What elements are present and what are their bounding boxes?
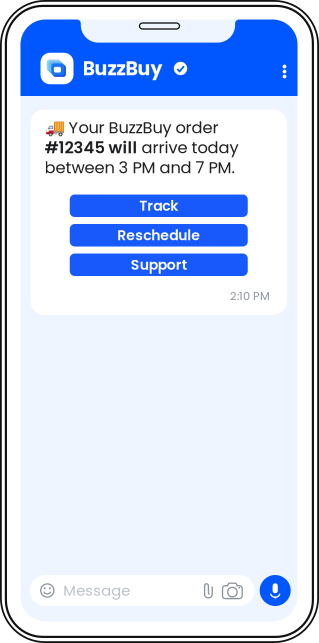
staticText: 2:10 PM (230, 288, 270, 304)
button[interactable]: Track (70, 194, 248, 217)
staticText: Support (131, 255, 187, 274)
button[interactable]: More options (275, 53, 293, 83)
button[interactable]: Reschedule (70, 224, 248, 246)
button[interactable]: BuzzBuy (40, 53, 73, 84)
button[interactable]: Message (30, 575, 255, 606)
staticText: between 3 PM and 7 PM. (44, 156, 234, 179)
button[interactable]: Support (70, 253, 248, 276)
staticText: Reschedule (117, 225, 200, 245)
staticText: BuzzBuy (82, 55, 162, 82)
staticText: Track (139, 196, 178, 215)
staticText: 🚚 Your BuzzBuy order (44, 116, 218, 139)
button[interactable]: Record voice message (260, 575, 291, 606)
staticText: #12345 will arrive today (44, 136, 238, 159)
staticText: Message (63, 580, 130, 601)
